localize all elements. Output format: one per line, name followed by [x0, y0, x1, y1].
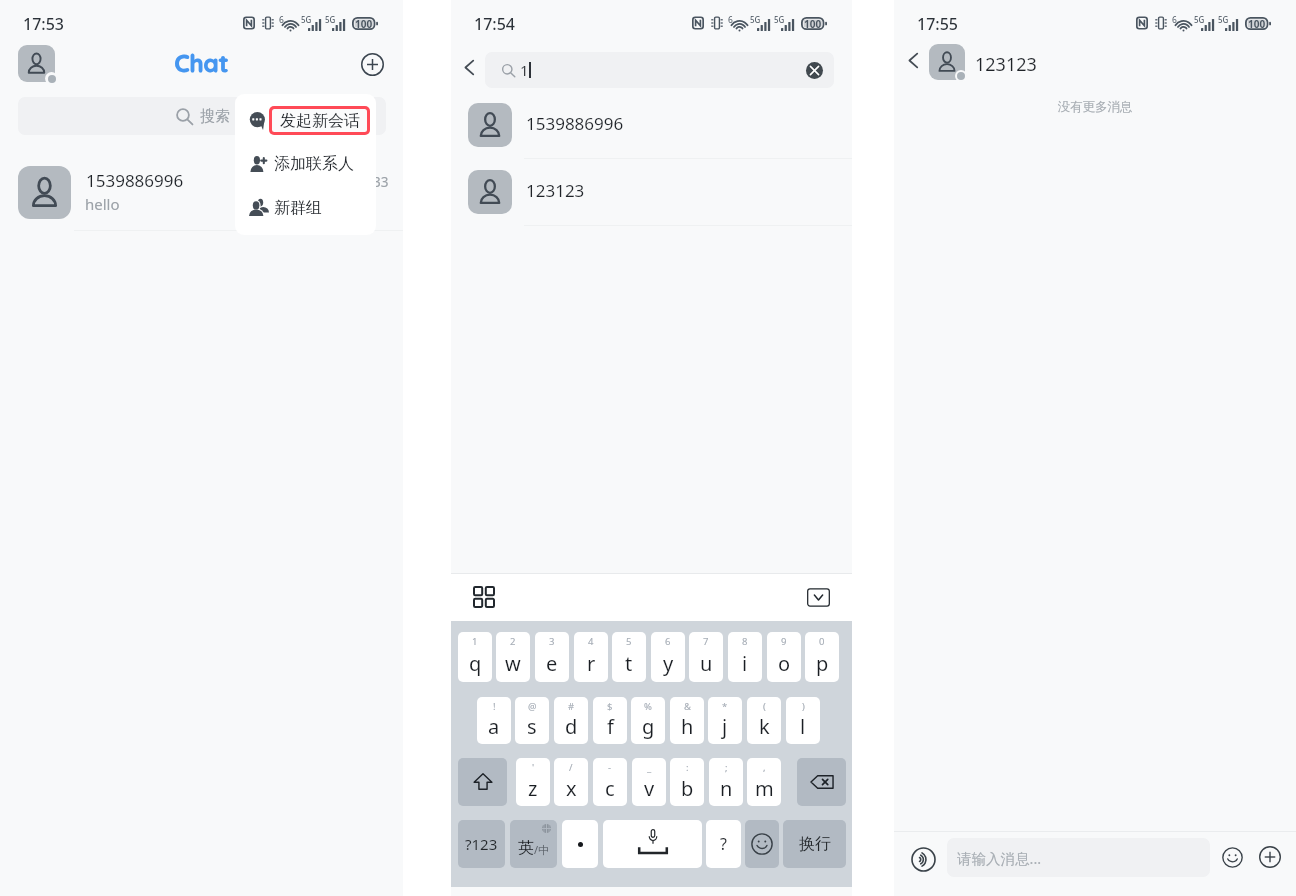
- button[interactable]: -: [593, 758, 627, 806]
- button[interactable]: Back: [457, 55, 481, 79]
- staticText: k: [759, 713, 770, 740]
- button[interactable]: 7: [689, 632, 723, 682]
- button[interactable]: 5: [612, 632, 646, 682]
- button[interactable]: @: [515, 697, 549, 744]
- staticText: #: [568, 700, 575, 713]
- staticText: ': [532, 761, 535, 774]
- button[interactable]: Emoji: [1221, 846, 1243, 868]
- button[interactable]: Shift: [458, 758, 507, 806]
- staticText: b: [681, 775, 694, 802]
- staticText: 6: [279, 14, 284, 26]
- staticText: s: [527, 713, 537, 740]
- staticText: i: [742, 650, 748, 677]
- staticText: 6: [1172, 14, 1177, 26]
- staticText: o: [778, 650, 791, 677]
- staticText: 1539886996: [86, 169, 184, 192]
- button[interactable]: [451, 92, 852, 157]
- button[interactable]: Keyboard layouts: [474, 587, 494, 607]
- staticText: 搜索: [200, 107, 230, 126]
- staticText: j: [722, 713, 728, 740]
- button[interactable]: :: [670, 758, 704, 806]
- button[interactable]: ,: [747, 758, 781, 806]
- button[interactable]: Period: [562, 820, 598, 868]
- button[interactable]: Profile: [18, 45, 55, 82]
- staticText: 5G: [301, 14, 312, 25]
- staticText: q: [469, 650, 482, 677]
- staticText: 17:33: [354, 173, 389, 191]
- button[interactable]: $: [593, 697, 627, 744]
- button[interactable]: %: [631, 697, 665, 744]
- staticText: 英: [518, 838, 534, 858]
- button[interactable]: New chat: [356, 48, 388, 80]
- button[interactable]: [451, 159, 852, 224]
- staticText: hello: [85, 194, 120, 214]
- button[interactable]: 英: [510, 820, 557, 868]
- staticText: ?: [720, 833, 727, 855]
- staticText: 123123: [975, 52, 1037, 77]
- button[interactable]: 3: [535, 632, 569, 682]
- staticText: 9: [781, 635, 787, 648]
- button[interactable]: [0, 158, 403, 228]
- staticText: h: [681, 713, 694, 740]
- staticText: 5G: [325, 14, 336, 25]
- staticText: ,: [763, 761, 766, 774]
- button[interactable]: ': [516, 758, 550, 806]
- button[interactable]: Space: [603, 820, 702, 868]
- button[interactable]: 2: [496, 632, 530, 682]
- staticText: $: [607, 700, 613, 713]
- staticText: 100: [355, 17, 373, 31]
- button[interactable]: ?123: [458, 820, 505, 868]
- button[interactable]: ;: [709, 758, 743, 806]
- staticText: 5: [626, 635, 632, 648]
- button[interactable]: 9: [767, 632, 801, 682]
- button[interactable]: Voice input: [910, 846, 936, 872]
- staticText: @: [528, 700, 537, 713]
- staticText: !: [493, 700, 496, 713]
- staticText: -: [608, 761, 612, 774]
- button[interactable]: 4: [574, 632, 608, 682]
- staticText: 请输入消息...: [957, 848, 1042, 868]
- button[interactable]: (: [747, 697, 781, 744]
- button[interactable]: 1: [485, 52, 834, 88]
- staticText: y: [663, 650, 674, 677]
- staticText: 6: [728, 14, 733, 26]
- button[interactable]: !: [477, 697, 511, 744]
- button[interactable]: Clear: [806, 62, 823, 79]
- staticText: 5G: [774, 14, 785, 25]
- staticText: (: [763, 700, 766, 713]
- button[interactable]: [235, 142, 376, 186]
- button[interactable]: _: [632, 758, 666, 806]
- staticText: 1: [520, 60, 529, 80]
- button[interactable]: 搜索: [18, 97, 386, 135]
- staticText: 1539886996: [526, 112, 624, 135]
- staticText: 添加联系人: [274, 154, 354, 174]
- button[interactable]: 1: [458, 632, 492, 682]
- button[interactable]: 0: [805, 632, 839, 682]
- button[interactable]: 换行: [783, 820, 846, 868]
- staticText: /中: [534, 842, 550, 857]
- button[interactable]: [235, 98, 376, 144]
- button[interactable]: *: [708, 697, 742, 744]
- button[interactable]: Hide keyboard: [807, 588, 830, 607]
- staticText: 123123: [526, 179, 585, 202]
- button[interactable]: &: [670, 697, 704, 744]
- button[interactable]: 请输入消息...: [947, 838, 1210, 877]
- staticText: 换行: [799, 834, 831, 854]
- button[interactable]: [929, 44, 965, 80]
- staticText: c: [605, 775, 615, 802]
- button[interactable]: More options: [1258, 845, 1281, 868]
- button[interactable]: #: [554, 697, 588, 744]
- staticText: Chat: [0, 48, 403, 78]
- button[interactable]: Emoji: [745, 820, 779, 868]
- button[interactable]: ): [786, 697, 820, 744]
- staticText: d: [565, 713, 578, 740]
- staticText: 3: [549, 635, 555, 648]
- button[interactable]: [235, 186, 376, 230]
- button[interactable]: 6: [651, 632, 685, 682]
- button[interactable]: ?: [706, 820, 741, 868]
- button[interactable]: Backspace: [797, 758, 846, 806]
- button[interactable]: /: [554, 758, 588, 806]
- staticText: 7: [703, 635, 709, 648]
- button[interactable]: 8: [728, 632, 762, 682]
- button[interactable]: Back: [901, 48, 925, 72]
